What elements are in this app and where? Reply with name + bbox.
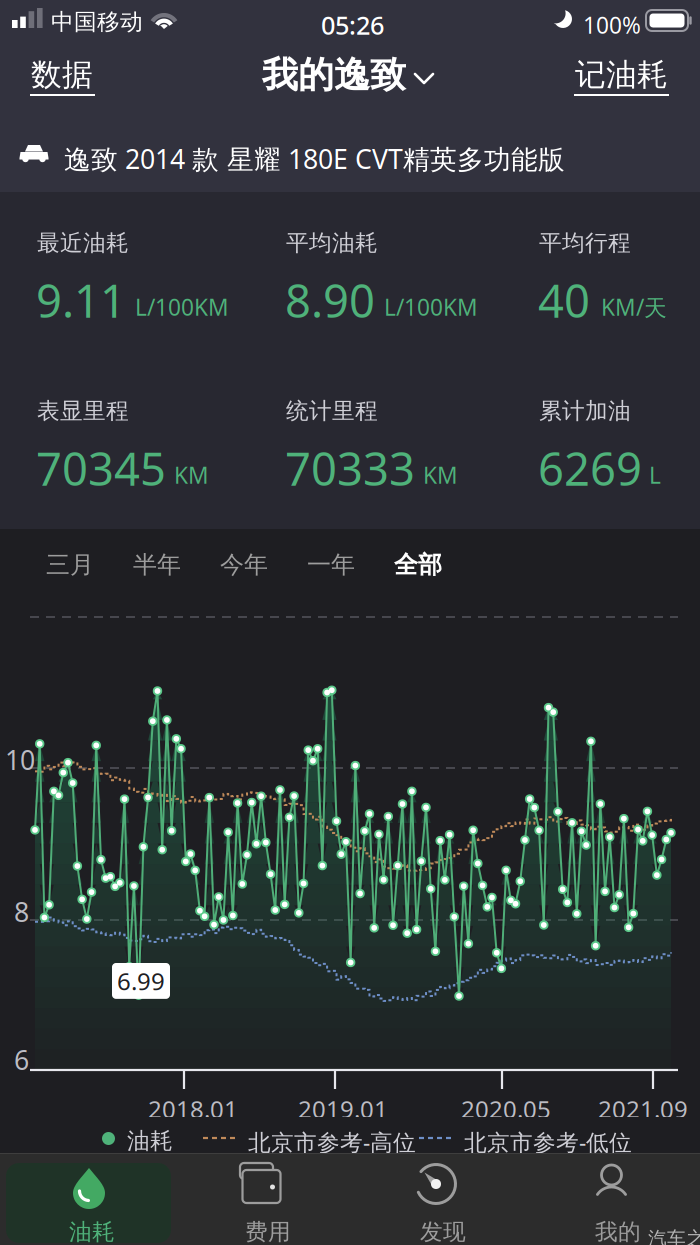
- staticText: KM: [423, 460, 458, 490]
- staticText: 累计加油: [539, 397, 631, 425]
- button[interactable]: 记油耗: [571, 42, 673, 120]
- staticText: 05:26: [321, 8, 384, 42]
- staticText: L/100KM: [135, 292, 229, 322]
- staticText: 8.90: [285, 270, 375, 330]
- staticText: 记油耗: [575, 56, 668, 94]
- staticText: 全部: [394, 550, 442, 579]
- staticText: L/100KM: [384, 292, 478, 322]
- staticText: 平均油耗: [286, 229, 378, 257]
- staticText: 2019.01: [298, 1093, 388, 1125]
- staticText: 统计里程: [286, 397, 378, 425]
- staticText: 8: [14, 894, 29, 929]
- staticText: KM/天: [601, 292, 667, 322]
- staticText: 汽车之家: [648, 1227, 700, 1245]
- button[interactable]: 费用: [181, 1163, 345, 1243]
- staticText: 表显里程: [37, 397, 129, 425]
- button[interactable]: 今年: [200, 529, 287, 591]
- staticText: 40: [538, 270, 590, 330]
- button[interactable]: 数据: [22, 42, 106, 120]
- staticText: 70345: [36, 438, 166, 498]
- button[interactable]: 逸致 2014 款 星耀 180E CVT精英多功能版: [0, 120, 700, 192]
- staticText: 2021.09: [598, 1093, 688, 1125]
- staticText: 北京市参考-低位: [464, 1127, 632, 1157]
- staticText: 6269: [538, 438, 642, 498]
- button[interactable]: 全部: [374, 529, 461, 591]
- staticText: 油耗: [69, 1218, 115, 1245]
- staticText: 100%: [583, 10, 641, 40]
- staticText: 10: [5, 742, 35, 777]
- staticText: 9.11: [36, 270, 126, 330]
- staticText: 油耗: [127, 1127, 173, 1155]
- button[interactable]: 半年: [113, 529, 200, 591]
- staticText: 半年: [133, 550, 181, 579]
- staticText: 费用: [245, 1218, 291, 1245]
- staticText: 我的: [595, 1218, 641, 1245]
- button[interactable]: 我的逸致: [256, 42, 446, 120]
- button[interactable]: 发现: [356, 1163, 520, 1243]
- staticText: 平均行程: [539, 229, 631, 257]
- staticText: 最近油耗: [37, 229, 129, 257]
- button[interactable]: 我的: [531, 1163, 695, 1243]
- staticText: KM: [174, 460, 209, 490]
- staticText: 70333: [285, 438, 415, 498]
- staticText: 发现: [420, 1218, 466, 1245]
- staticText: 中国移动: [51, 8, 143, 36]
- staticText: 我的逸致: [262, 53, 406, 97]
- staticText: 6: [14, 1042, 29, 1077]
- button[interactable]: 油耗: [6, 1163, 171, 1243]
- staticText: 逸致 2014 款 星耀 180E CVT精英多功能版: [64, 141, 565, 176]
- button[interactable]: 一年: [287, 529, 374, 591]
- button[interactable]: 三月: [26, 529, 113, 591]
- staticText: 数据: [31, 56, 93, 94]
- staticText: 今年: [220, 550, 268, 579]
- staticText: 6.99: [117, 965, 165, 997]
- staticText: 一年: [307, 550, 355, 579]
- staticText: 2018.01: [148, 1093, 238, 1125]
- staticText: 三月: [46, 550, 94, 579]
- staticText: 2020.05: [461, 1093, 551, 1125]
- staticText: 北京市参考-高位: [248, 1127, 416, 1157]
- staticText: L: [649, 460, 661, 490]
